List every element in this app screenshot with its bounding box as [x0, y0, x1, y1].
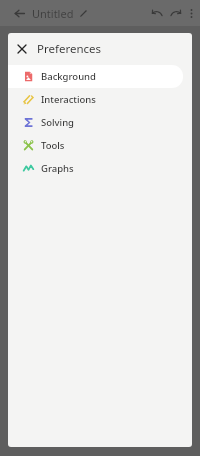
staticText: Background	[41, 70, 96, 83]
button[interactable]: Solving	[8, 111, 183, 134]
button[interactable]: Undo	[148, 4, 166, 22]
staticText: Solving	[41, 116, 75, 129]
button[interactable]: Tools	[8, 134, 183, 157]
staticText: Untitled	[32, 6, 74, 21]
button[interactable]: Redo	[167, 4, 185, 22]
staticText: Tools	[41, 139, 65, 152]
staticText: Graphs	[41, 162, 74, 175]
button[interactable]: Close	[13, 40, 30, 57]
button[interactable]: Back	[6, 0, 32, 26]
staticText: Preferences	[37, 41, 102, 57]
button[interactable]: Graphs	[8, 157, 183, 180]
button[interactable]: More options	[182, 4, 200, 22]
button[interactable]: Background	[8, 65, 183, 88]
button[interactable]: Interactions	[8, 88, 183, 111]
button[interactable]: Untitled	[32, 0, 88, 26]
staticText: Interactions	[41, 93, 96, 106]
